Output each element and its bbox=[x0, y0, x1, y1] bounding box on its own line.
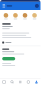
button[interactable]: Account bbox=[35, 4, 39, 8]
button[interactable]: Category 4 bbox=[31, 13, 38, 19]
button[interactable]: Orders bbox=[16, 78, 24, 86]
button[interactable]: Menu bbox=[2, 3, 6, 9]
button[interactable] bbox=[2, 57, 15, 60]
button[interactable]: Saved bbox=[24, 78, 32, 86]
button[interactable]: Category 3 bbox=[21, 13, 29, 19]
button[interactable]: Category 2 bbox=[12, 13, 19, 19]
button[interactable]: Home bbox=[0, 78, 8, 86]
button[interactable]: Profile bbox=[32, 78, 40, 86]
button[interactable]: Category 1 bbox=[2, 13, 9, 19]
button[interactable]: Search bbox=[8, 78, 16, 86]
